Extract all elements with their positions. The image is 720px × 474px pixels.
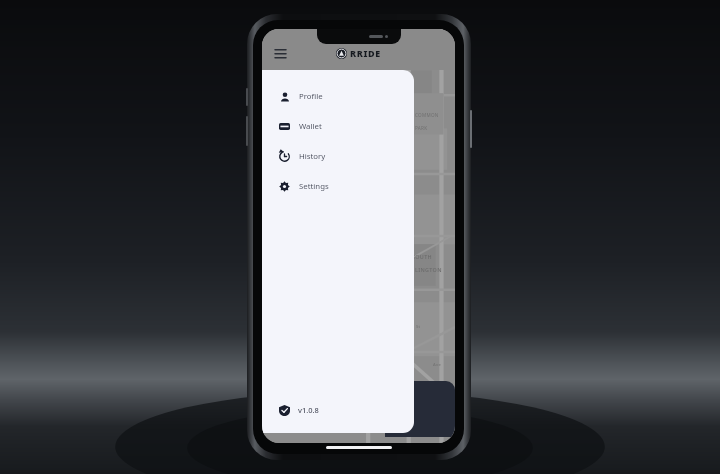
staticText: PARK xyxy=(415,125,428,131)
staticText: Ave xyxy=(433,362,442,368)
button[interactable]: RRIDE home xyxy=(336,47,381,59)
button[interactable]: Wallet xyxy=(262,111,414,141)
staticText: COMMON xyxy=(415,112,439,118)
staticText: Profile xyxy=(299,91,323,102)
button[interactable] xyxy=(385,381,455,437)
staticText: v1.0.8 xyxy=(298,405,319,415)
button[interactable]: Profile xyxy=(262,81,414,111)
staticText: SOUTH xyxy=(412,253,432,260)
button[interactable]: History xyxy=(262,141,414,171)
staticText: RRIDE xyxy=(350,47,381,59)
button[interactable]: Settings xyxy=(262,171,414,201)
staticText: Wallet xyxy=(299,121,322,132)
staticText: History xyxy=(299,151,326,162)
staticText: LINGTON xyxy=(415,266,442,273)
staticText: Settings xyxy=(299,181,329,192)
button[interactable]: v1.0.8 xyxy=(262,393,414,427)
staticText: St xyxy=(416,324,421,330)
button[interactable]: Open navigation menu xyxy=(271,44,289,62)
